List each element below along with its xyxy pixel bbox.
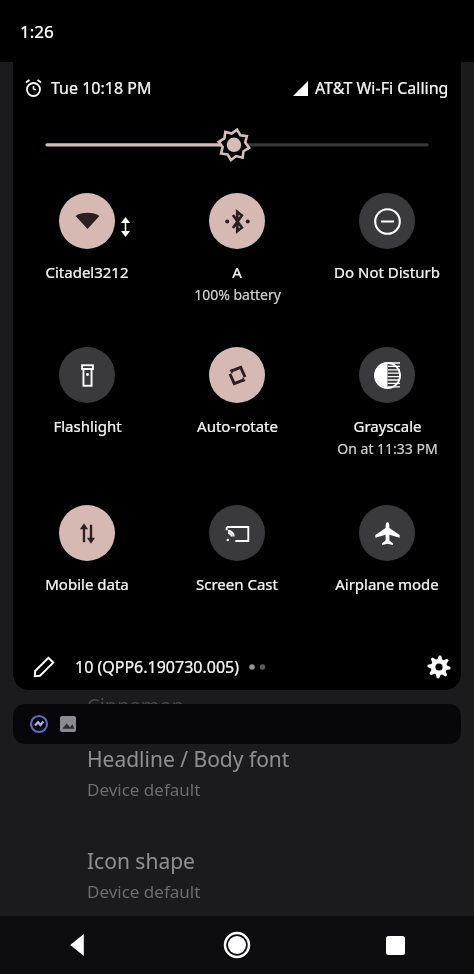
staticText: Headline / Body font [87,745,290,774]
button[interactable]: Mobile data [25,505,149,594]
staticText: Auto-rotate [197,416,278,436]
staticText: Device default [87,880,201,903]
staticText: Do Not Disturb [334,262,440,282]
staticText: Flashlight [53,416,122,436]
button[interactable]: Edit tiles [31,654,57,680]
button[interactable] [13,704,461,744]
staticText: 1:26 [20,20,54,43]
staticText: Cinnamon [87,692,184,719]
staticText: AT&T Wi-Fi Calling [315,77,449,99]
staticText: Citadel3212 [45,262,129,282]
button[interactable]: Flashlight [25,347,149,436]
staticText: 10 (QPP6.190730.005) [75,656,240,678]
button[interactable]: Brightness [13,124,461,164]
button[interactable]: Recent apps [316,916,474,974]
staticText: On at 11:33 PM [337,439,438,458]
staticText: Device default [87,778,201,801]
staticText: Tue 10:18 PM [51,77,152,99]
button[interactable]: Bluetooth [175,193,299,304]
button[interactable]: Home [158,916,316,974]
staticText: Icon shape [87,847,195,876]
staticText: Mobile data [45,574,129,594]
staticText: Grayscale [353,416,422,436]
button[interactable]: Wi-Fi [25,193,149,282]
button[interactable]: Do Not Disturb [325,193,449,282]
button[interactable]: Back [0,916,158,974]
button[interactable]: Screen Cast [175,505,299,594]
staticText: Screen Cast [196,574,278,594]
button[interactable]: Grayscale [325,347,449,458]
staticText: Airplane mode [335,574,439,594]
button[interactable]: Settings [425,653,453,681]
staticText: 100% battery [194,285,281,304]
button[interactable]: Airplane mode [325,505,449,594]
button[interactable]: Auto-rotate [175,347,299,436]
staticText: A [232,262,242,282]
